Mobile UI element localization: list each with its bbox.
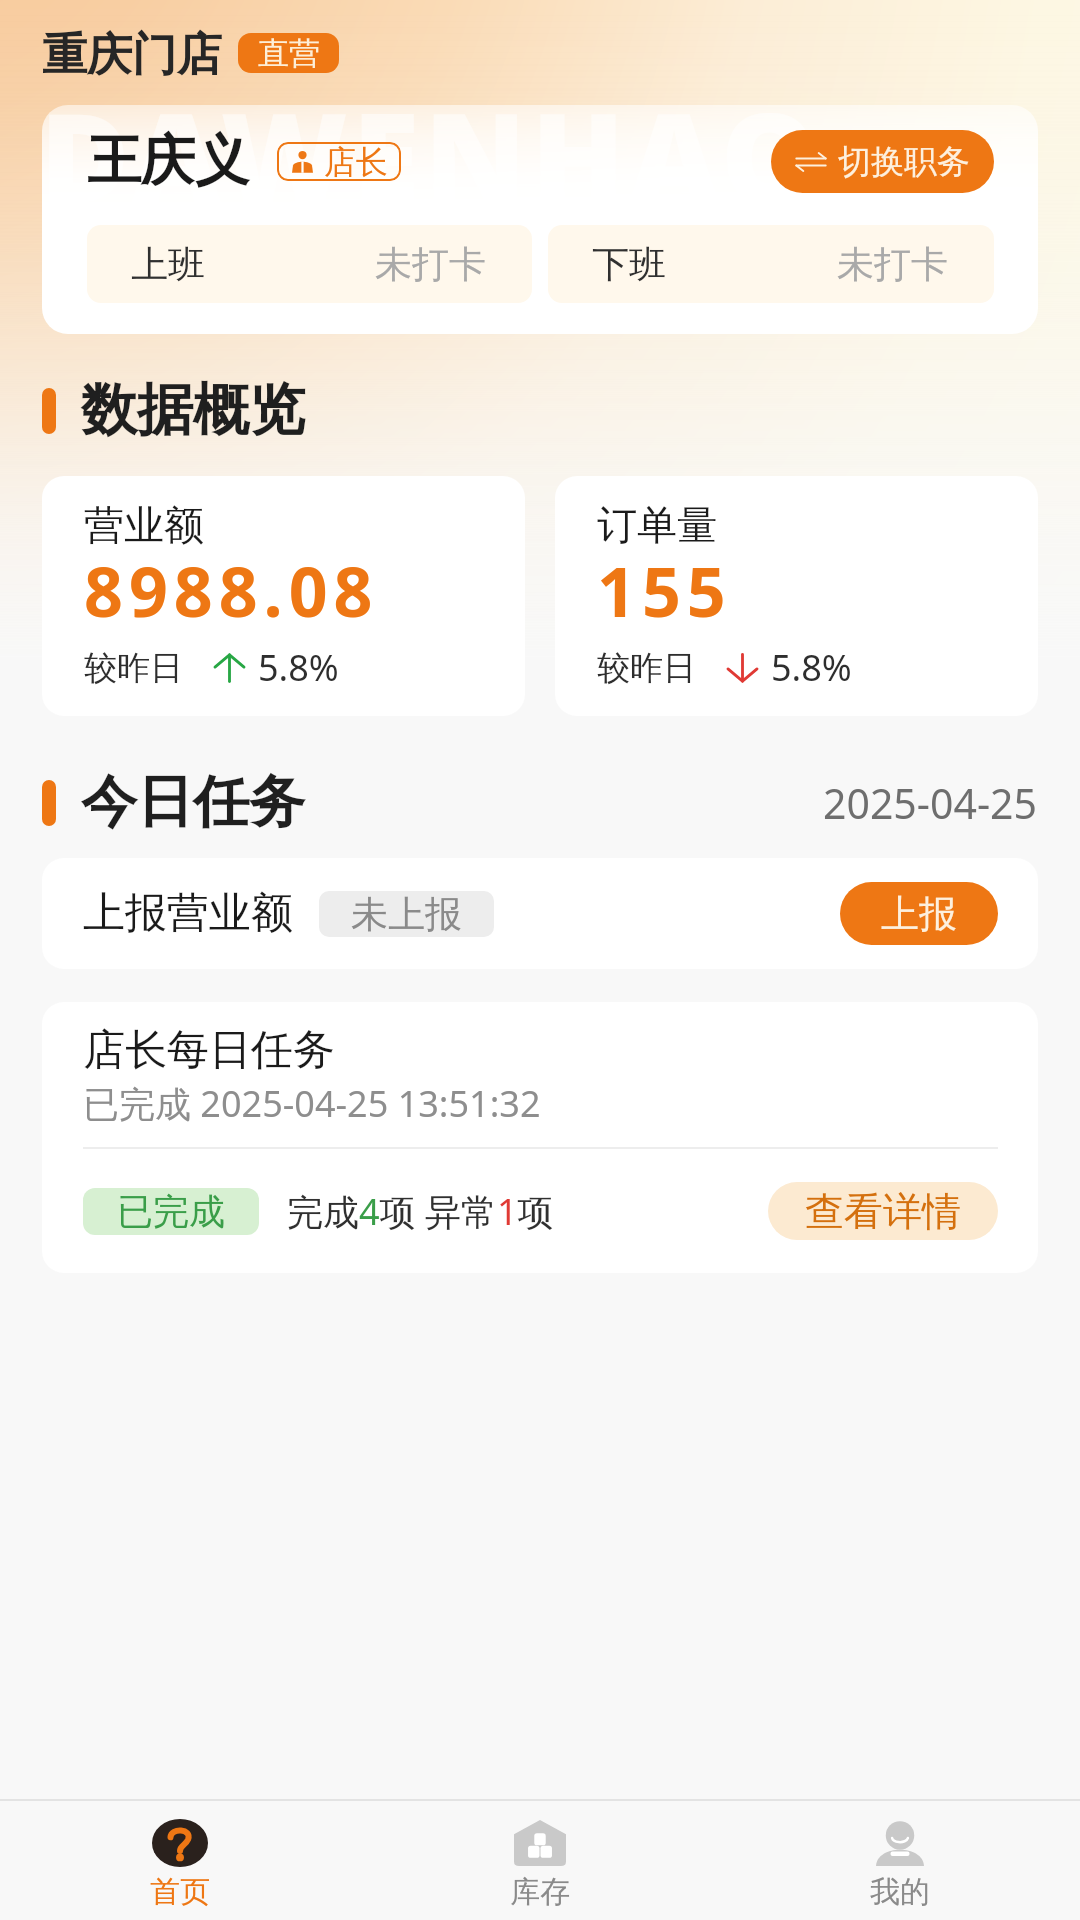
staticText: 完成4项 异常1项 (287, 1187, 554, 1236)
staticText: DAWENHAO (40, 72, 824, 238)
staticText: 上报营业额 (83, 887, 293, 940)
button[interactable]: 切换职务 (771, 130, 994, 193)
staticText: 2025-04-25 (823, 775, 1038, 831)
staticText: 切换职务 (838, 141, 970, 183)
staticText: 重庆门店 (42, 27, 222, 84)
button[interactable]: 首页 (0, 1801, 360, 1920)
button[interactable]: 上报 (840, 882, 998, 945)
staticText: 王庆义 (87, 127, 249, 195)
staticText: 未打卡 (375, 241, 486, 288)
staticText: 我的 (870, 1873, 930, 1911)
staticText: 已完成 (117, 1189, 225, 1234)
staticText: 店长每日任务 (83, 1024, 335, 1077)
staticText: 未上报 (351, 891, 462, 937)
button[interactable]: 我的 (720, 1801, 1080, 1920)
staticText: 较昨日 (84, 647, 183, 689)
staticText: 155 (597, 544, 732, 637)
staticText: 8988.08 (84, 544, 379, 637)
button[interactable]: 营业额 (42, 476, 525, 716)
button[interactable]: 上班 (87, 225, 532, 303)
staticText: 订单量 (597, 500, 717, 550)
staticText: 直营 (258, 34, 320, 73)
staticText: 5.8% (258, 643, 339, 692)
staticText: 库存 (510, 1873, 570, 1911)
staticText: 查看详情 (805, 1187, 961, 1236)
button[interactable]: 查看详情 (768, 1182, 998, 1240)
staticText: 店长 (324, 142, 388, 181)
staticText: 首页 (150, 1873, 210, 1911)
button[interactable]: 订单量 (555, 476, 1038, 716)
staticText: 数据概览 (81, 375, 305, 446)
button[interactable]: 下班 (548, 225, 994, 303)
staticText: 已完成 2025-04-25 13:51:32 (83, 1079, 541, 1128)
button[interactable]: 直营 (238, 33, 339, 73)
button[interactable]: 库存 (360, 1801, 720, 1920)
staticText: 未打卡 (837, 241, 948, 288)
staticText: 下班 (592, 241, 666, 288)
button[interactable]: 店长每日任务 (42, 1002, 1038, 1273)
staticText: 上班 (131, 241, 205, 288)
staticText: 上报 (881, 890, 957, 938)
staticText: 较昨日 (597, 647, 696, 689)
staticText: 营业额 (84, 500, 204, 550)
staticText: 今日任务 (81, 767, 305, 838)
staticText: 5.8% (771, 643, 852, 692)
